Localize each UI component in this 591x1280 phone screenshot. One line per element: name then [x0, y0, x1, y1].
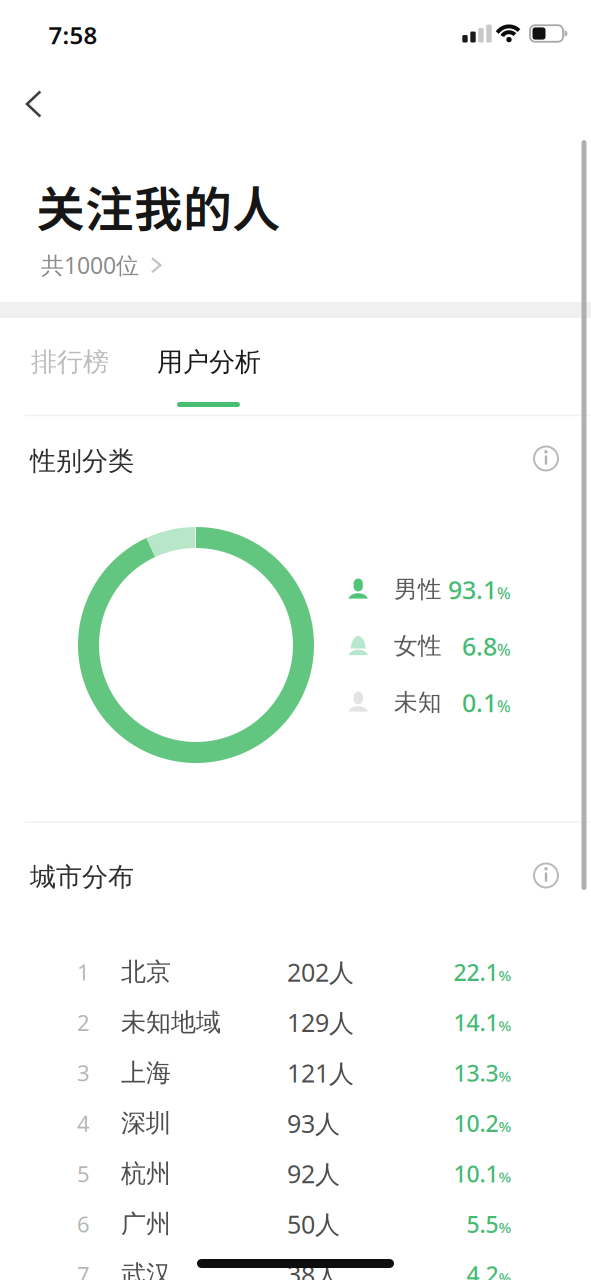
staticText: 202人 [287, 955, 354, 989]
staticText: 5.5% [466, 1209, 511, 1239]
staticText: 10.1% [453, 1158, 511, 1189]
staticText: 未知 [394, 688, 442, 717]
staticText: 93.1% [448, 573, 511, 606]
staticText: 杭州 [121, 1158, 171, 1189]
staticText: 3 [77, 1058, 90, 1088]
staticText: 6 [77, 1209, 90, 1239]
button[interactable]: 用户分析 [157, 335, 317, 389]
staticText: 男性 [394, 575, 442, 604]
button[interactable]: 性别分类说明 [529, 441, 563, 475]
staticText: 13.3% [453, 1057, 511, 1088]
staticText: 93人 [287, 1106, 340, 1140]
staticText: 2 [77, 1007, 90, 1037]
staticText: 22.1% [453, 957, 511, 987]
staticText: 未知地域 [121, 1007, 221, 1038]
staticText: 10.2% [453, 1108, 511, 1138]
staticText: 92人 [287, 1157, 340, 1191]
staticText: 129人 [287, 1005, 354, 1039]
staticText: 排行榜 [31, 346, 109, 378]
staticText: 7:58 [48, 19, 97, 51]
staticText: 5 [77, 1159, 90, 1189]
staticText: 38人 [287, 1257, 340, 1280]
staticText: 女性 [394, 631, 442, 661]
button[interactable]: 共1000位 [41, 245, 163, 285]
staticText: 上海 [121, 1057, 171, 1089]
staticText: 1 [77, 957, 90, 987]
staticText: 武汉 [121, 1259, 171, 1280]
staticText: 用户分析 [157, 346, 261, 378]
staticText: 7 [77, 1259, 90, 1280]
staticText: 50人 [287, 1207, 340, 1241]
staticText: 北京 [121, 956, 171, 988]
staticText: 城市分布 [30, 861, 134, 893]
staticText: 4.2% [466, 1259, 511, 1280]
staticText: 性别分类 [30, 445, 134, 477]
staticText: 关注我的人 [36, 171, 281, 241]
staticText: 广州 [121, 1208, 171, 1240]
staticText: 6.8% [462, 629, 511, 663]
staticText: 4 [77, 1108, 90, 1138]
staticText: 共1000位 [41, 249, 139, 281]
staticText: 121人 [287, 1056, 354, 1090]
staticText: 0.1% [462, 686, 511, 719]
button[interactable]: 城市分布说明 [529, 858, 563, 892]
button[interactable]: 排行榜 [31, 335, 171, 389]
button[interactable]: Back [11, 82, 55, 126]
staticText: 14.1% [453, 1007, 511, 1038]
staticText: 深圳 [121, 1107, 171, 1139]
